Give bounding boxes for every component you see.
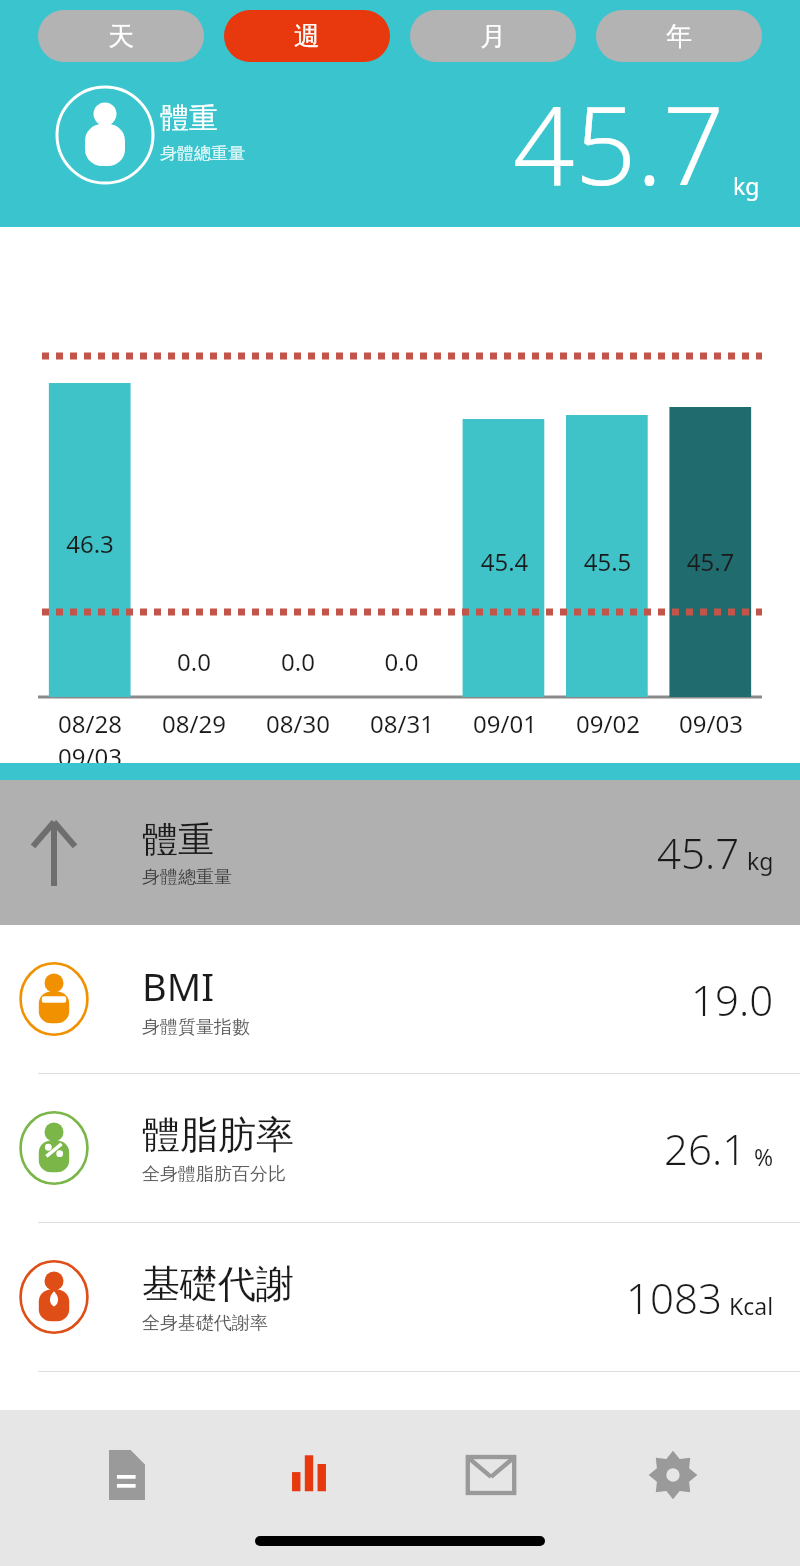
staticText: 09/02: [576, 707, 640, 740]
staticText: 天: [108, 20, 134, 53]
staticText: 身體總重量: [160, 143, 245, 164]
staticText: 全身體脂肪百分比: [142, 1163, 286, 1186]
staticText: kg: [733, 170, 760, 201]
staticText: 08/29: [162, 707, 226, 740]
staticText: 月: [480, 20, 506, 53]
button[interactable]: 基礎代謝: [0, 1223, 800, 1371]
staticText: 45.7: [513, 70, 725, 217]
staticText: 19.0: [691, 971, 774, 1028]
staticText: 0.0: [142, 645, 246, 678]
button[interactable]: 體重: [0, 780, 800, 925]
staticText: 46.3: [38, 527, 142, 560]
staticText: 45.7: [659, 545, 762, 578]
staticText: 45.7: [657, 824, 740, 881]
staticText: 體重: [142, 817, 214, 862]
staticText: 身體總重量: [142, 866, 232, 889]
staticText: kg: [747, 845, 774, 876]
staticText: 全身基礎代謝率: [142, 1312, 268, 1335]
staticText: 09/03: [679, 707, 743, 740]
staticText: BMI: [142, 960, 215, 1012]
staticText: 週: [294, 20, 320, 53]
staticText: 0.0: [246, 645, 350, 678]
staticText: 體重: [160, 100, 218, 137]
staticText: Kcal: [729, 1290, 774, 1321]
button[interactable]: BMI: [0, 925, 800, 1073]
button[interactable]: Settings: [618, 1430, 728, 1520]
button[interactable]: Documents: [72, 1430, 182, 1520]
staticText: 0.0: [350, 645, 453, 678]
staticText: 基礎代謝: [142, 1260, 294, 1308]
button[interactable]: 週: [224, 10, 390, 62]
staticText: 年: [666, 20, 692, 53]
staticText: 08/28: [58, 707, 122, 740]
staticText: 09/01: [473, 707, 537, 740]
staticText: 1083: [626, 1269, 722, 1326]
button[interactable]: Messages: [436, 1430, 546, 1520]
staticText: 45.4: [453, 545, 556, 578]
staticText: 45.5: [556, 545, 659, 578]
staticText: 身體質量指數: [142, 1016, 250, 1039]
button[interactable]: 月: [410, 10, 576, 62]
staticText: 26.1: [664, 1120, 747, 1177]
staticText: %: [754, 1141, 774, 1172]
button[interactable]: 體脂肪率: [0, 1074, 800, 1222]
button[interactable]: 年: [596, 10, 762, 62]
staticText: 09/03: [58, 740, 122, 763]
staticText: 08/31: [370, 707, 434, 740]
staticText: 08/30: [266, 707, 330, 740]
staticText: 體脂肪率: [142, 1111, 294, 1159]
button[interactable]: 天: [38, 10, 204, 62]
button[interactable]: Statistics: [254, 1430, 364, 1520]
